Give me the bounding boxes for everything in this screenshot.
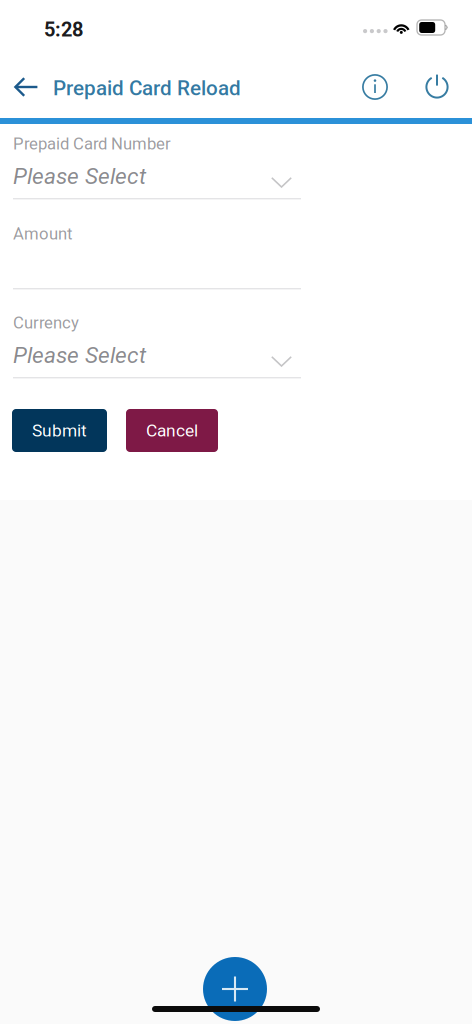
button[interactable]: Information: [353, 65, 397, 109]
staticText: Amount: [13, 224, 72, 243]
staticText: Please Select: [13, 163, 146, 190]
staticText: Currency: [13, 313, 79, 332]
staticText: Please Select: [13, 342, 146, 369]
staticText: Prepaid Card Number: [13, 134, 171, 153]
button[interactable]: Add: [203, 957, 267, 1021]
staticText: 5:28: [44, 18, 83, 41]
button[interactable]: Cancel: [126, 409, 218, 452]
staticText: Submit: [32, 420, 87, 441]
button[interactable]: Please Select: [13, 342, 303, 382]
staticText: Prepaid Card Reload: [53, 76, 241, 100]
button[interactable]: Power off: [416, 64, 460, 108]
button[interactable]: Back: [6, 65, 47, 109]
button[interactable]: Submit: [12, 409, 107, 452]
staticText: Cancel: [146, 420, 198, 441]
button[interactable]: Please Select: [13, 163, 303, 203]
